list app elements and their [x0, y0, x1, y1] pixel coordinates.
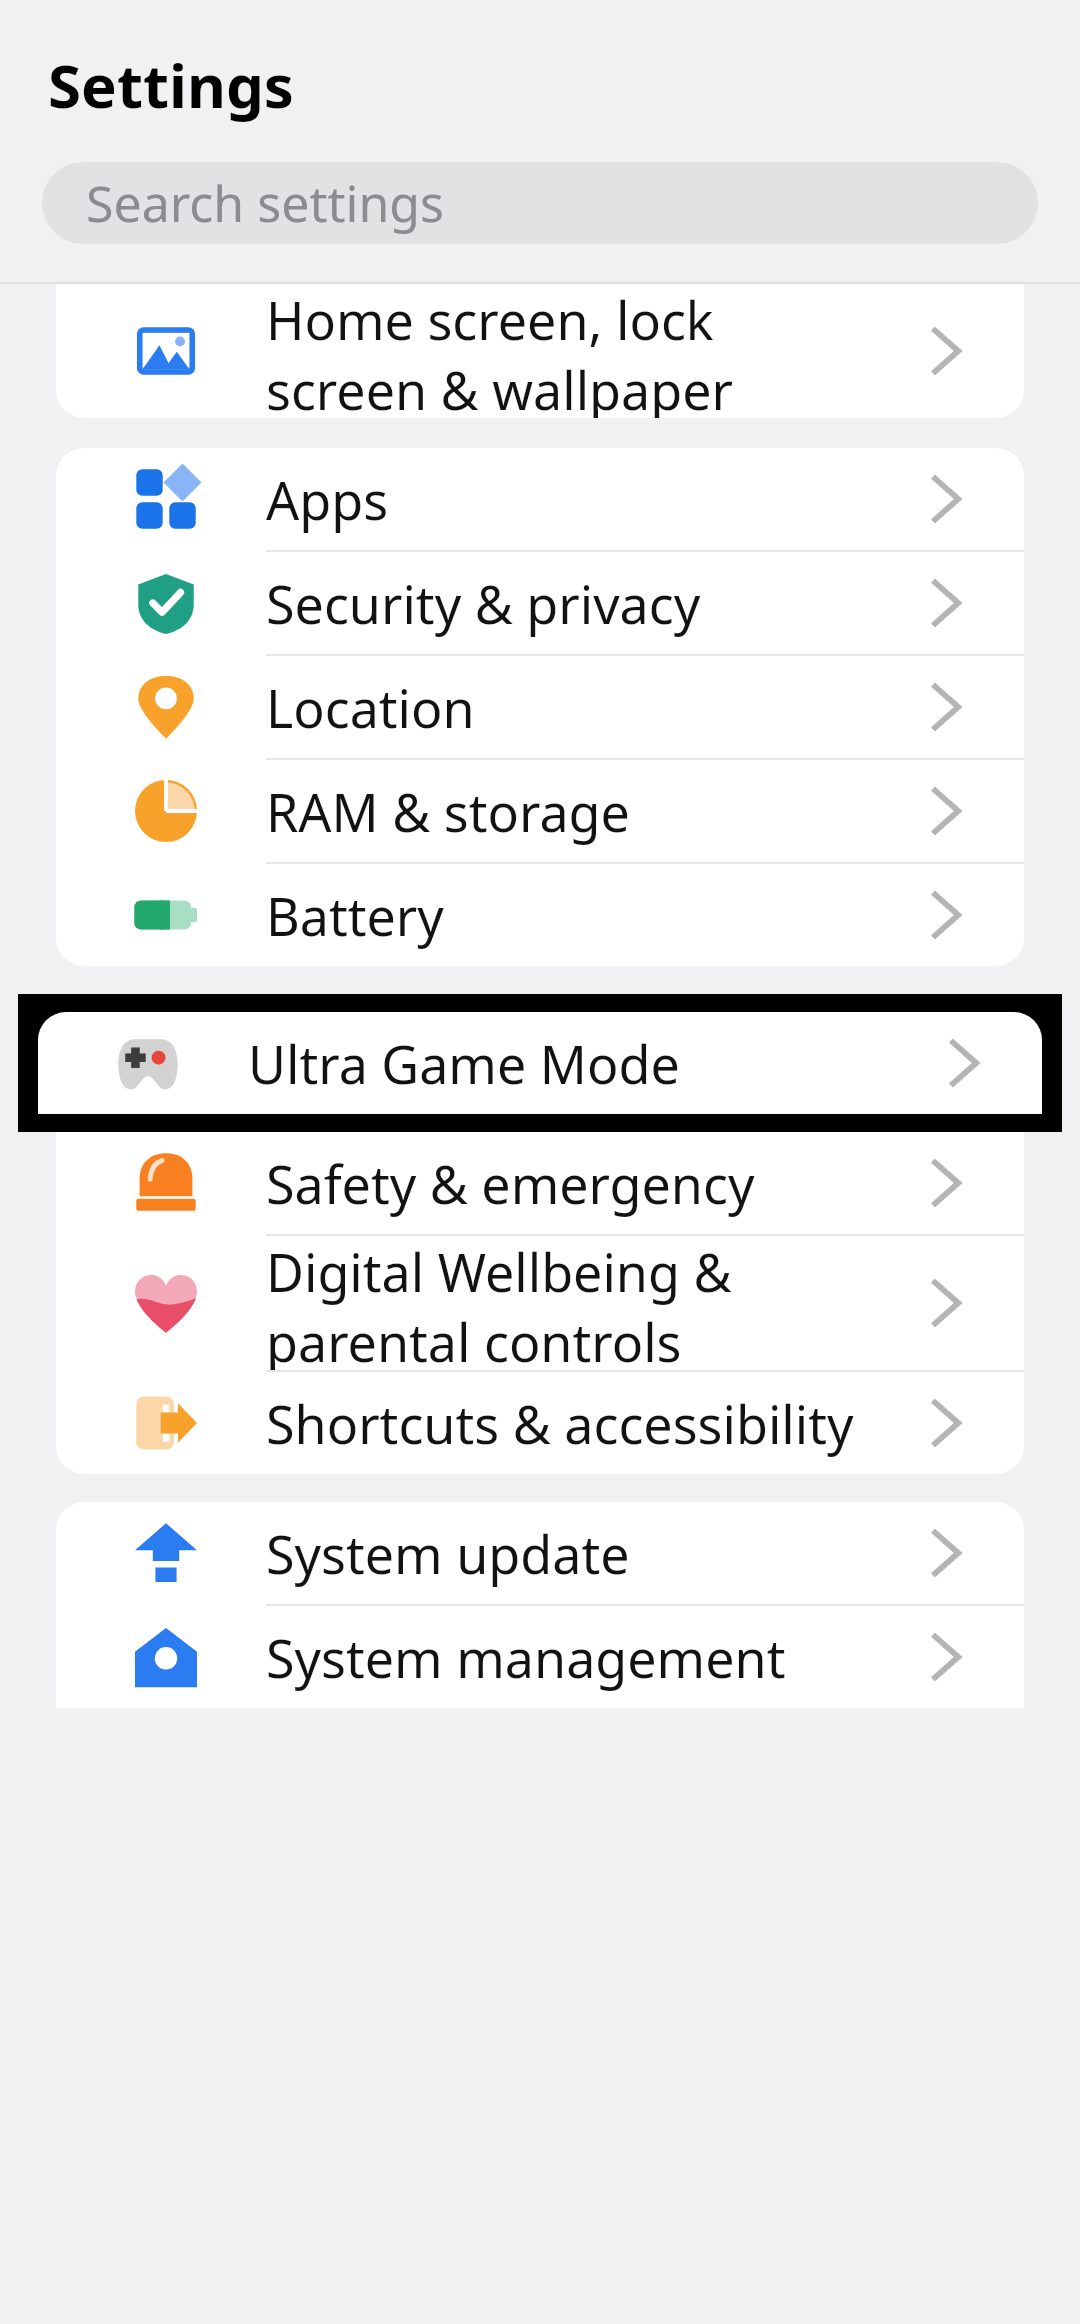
staticText: Battery [266, 880, 888, 951]
button[interactable]: System management [56, 1606, 1024, 1708]
staticText: Apps [266, 464, 888, 535]
button[interactable]: Shortcuts & accessibility [56, 1372, 1024, 1474]
staticText: System management [266, 1622, 888, 1693]
button[interactable]: Apps [56, 448, 1024, 550]
button[interactable]: RAM & storage [56, 760, 1024, 862]
button[interactable]: Battery [56, 864, 1024, 966]
staticText: Safety & emergency [266, 1148, 888, 1219]
button[interactable]: System update [56, 1502, 1024, 1604]
staticText: Security & privacy [266, 568, 888, 639]
button[interactable]: Security & privacy [56, 552, 1024, 654]
staticText: Digital Wellbeing & parental controls [266, 1236, 888, 1370]
staticText: RAM & storage [266, 776, 888, 847]
button[interactable]: Ultra Game Mode [38, 1012, 1042, 1114]
staticText: Settings [48, 44, 294, 126]
staticText: System update [266, 1518, 888, 1589]
staticText: Ultra Game Mode [248, 1028, 906, 1099]
staticText: Search settings [86, 169, 444, 237]
button[interactable]: Digital Wellbeing & parental controls [56, 1236, 1024, 1370]
staticText: Location [266, 672, 888, 743]
staticText: Home screen, lock screen & wallpaper [266, 284, 888, 418]
staticText: Shortcuts & accessibility [266, 1388, 888, 1459]
button[interactable]: Search settings [42, 162, 1038, 244]
button[interactable]: Home screen, lock screen & wallpaper [56, 284, 1024, 418]
button[interactable]: Location [56, 656, 1024, 758]
button[interactable]: Safety & emergency [56, 1132, 1024, 1234]
